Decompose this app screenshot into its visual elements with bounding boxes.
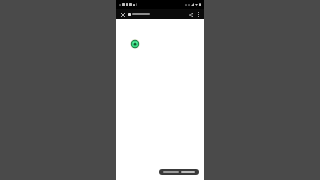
button[interactable]: Close — [119, 11, 126, 18]
button[interactable]: Share — [187, 11, 194, 18]
button[interactable]: App icon — [130, 39, 140, 49]
button[interactable]: More options — [195, 11, 201, 17]
button[interactable] — [128, 9, 187, 19]
button[interactable] — [159, 169, 199, 175]
